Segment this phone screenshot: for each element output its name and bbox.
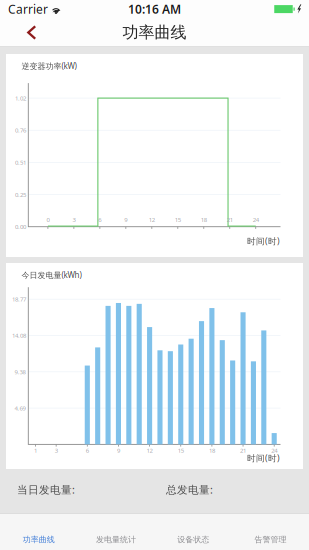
button[interactable]: 发电量统计 <box>77 513 154 550</box>
staticText: 18 <box>209 446 215 454</box>
staticText: 总发电量: <box>166 482 213 497</box>
button[interactable]: Back <box>0 18 50 46</box>
staticText: 当日发电量: <box>17 482 75 497</box>
staticText: 0 <box>46 216 49 224</box>
staticText: 0.00 <box>15 223 26 231</box>
staticText: 12 <box>147 446 153 454</box>
staticText: 功率曲线 <box>23 534 55 545</box>
button[interactable]: 告警管理 <box>232 513 309 550</box>
staticText: 设备状态 <box>177 534 209 545</box>
staticText: Carrier <box>8 1 48 17</box>
staticText: 15 <box>175 216 181 224</box>
staticText: 24 <box>253 216 259 224</box>
staticText: 时间(时) <box>247 452 280 464</box>
staticText: 发电量统计 <box>96 534 136 545</box>
staticText: 18.77 <box>12 295 26 303</box>
staticText: 0.25 <box>15 190 26 199</box>
staticText: 6 <box>98 216 101 224</box>
staticText: 逆变器功率(kW) <box>21 60 76 71</box>
button[interactable]: 功率曲线 <box>0 513 77 550</box>
staticText: 9.38 <box>14 368 25 376</box>
staticText: 1 <box>34 446 37 454</box>
staticText: 24 <box>271 446 277 454</box>
staticText: 3 <box>55 446 58 454</box>
staticText: 今日发电量(kWh) <box>21 269 81 280</box>
staticText: 1.02 <box>15 94 26 102</box>
staticText: 9 <box>124 216 127 224</box>
staticText: 12 <box>149 216 155 224</box>
staticText: 21 <box>240 446 246 454</box>
staticText: 9 <box>117 446 120 454</box>
staticText: 时间(时) <box>247 235 280 247</box>
staticText: 10:16 AM <box>128 1 181 17</box>
staticText: 21 <box>227 216 233 224</box>
staticText: 0.51 <box>15 158 26 166</box>
staticText: 4.69 <box>14 404 25 412</box>
staticText: 6 <box>86 446 89 454</box>
staticText: 0.76 <box>15 126 26 134</box>
staticText: 功率曲线 <box>122 22 186 43</box>
staticText: 3 <box>72 216 75 224</box>
button[interactable]: 设备状态 <box>154 513 232 550</box>
staticText: 告警管理 <box>254 534 286 545</box>
staticText: 14.08 <box>12 331 26 340</box>
staticText: 18 <box>201 216 207 224</box>
staticText: 15 <box>178 446 184 454</box>
